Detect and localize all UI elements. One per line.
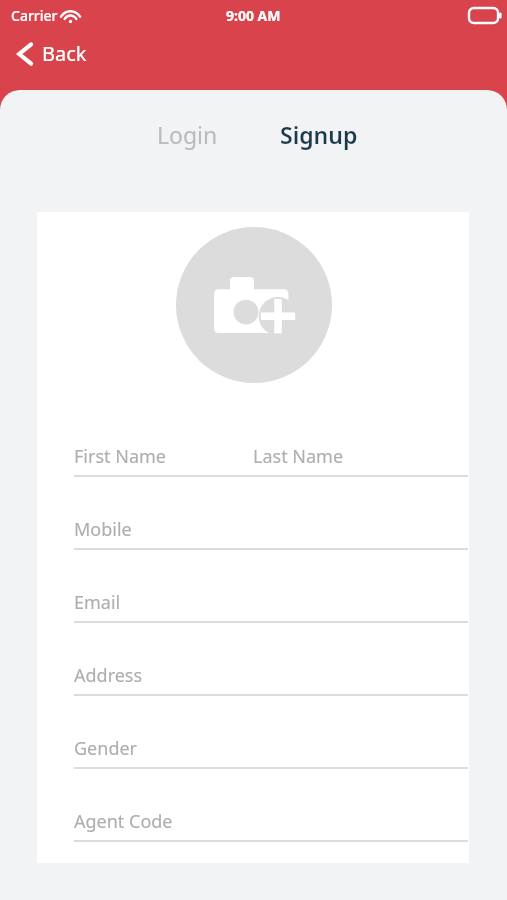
button[interactable]: Gender	[37, 726, 469, 799]
staticText: Carrier	[11, 6, 58, 25]
staticText: Gender	[74, 736, 138, 761]
staticText: Address	[74, 663, 143, 688]
button[interactable]: Signup	[262, 112, 376, 157]
button[interactable]: Agent Code	[37, 799, 469, 863]
button[interactable]: Add profile photo	[176, 227, 332, 383]
staticText: Email	[74, 590, 121, 615]
staticText: Agent Code	[74, 809, 173, 834]
staticText: Mobile	[74, 517, 132, 542]
button[interactable]: Email	[37, 580, 469, 653]
staticText: First Name	[74, 444, 166, 469]
button[interactable]: Login	[137, 112, 238, 157]
staticText: Back	[42, 40, 87, 67]
staticText: Signup	[280, 119, 358, 150]
button[interactable]: Back	[12, 36, 92, 71]
button[interactable]: First Name	[37, 434, 469, 507]
button[interactable]: Address	[37, 653, 469, 726]
staticText: Last Name	[253, 444, 344, 469]
staticText: Login	[157, 119, 218, 150]
button[interactable]: Mobile	[37, 507, 469, 580]
staticText: 9:00 AM	[226, 6, 281, 25]
